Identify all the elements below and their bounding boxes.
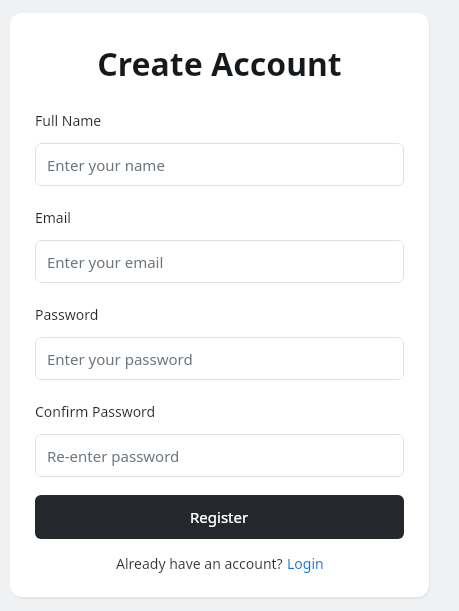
staticText: Confirm Password — [35, 402, 156, 421]
button[interactable]: Re-enter password — [35, 434, 404, 477]
staticText: Login — [287, 554, 324, 573]
staticText: Register — [190, 507, 249, 527]
staticText: Password — [35, 305, 99, 324]
button[interactable]: Login — [287, 554, 324, 573]
staticText: Email — [35, 208, 71, 227]
staticText: Already have an account? — [116, 554, 287, 573]
staticText: Full Name — [35, 111, 102, 130]
staticText: Enter your name — [47, 155, 165, 175]
button[interactable]: Register — [35, 495, 404, 539]
staticText: Enter your email — [47, 252, 164, 272]
button[interactable]: Enter your email — [35, 240, 404, 283]
button[interactable]: Enter your password — [35, 337, 404, 380]
staticText: Enter your password — [47, 349, 193, 369]
staticText: Re-enter password — [47, 446, 180, 466]
staticText: Create Account — [35, 42, 404, 86]
button[interactable]: Enter your name — [35, 143, 404, 186]
